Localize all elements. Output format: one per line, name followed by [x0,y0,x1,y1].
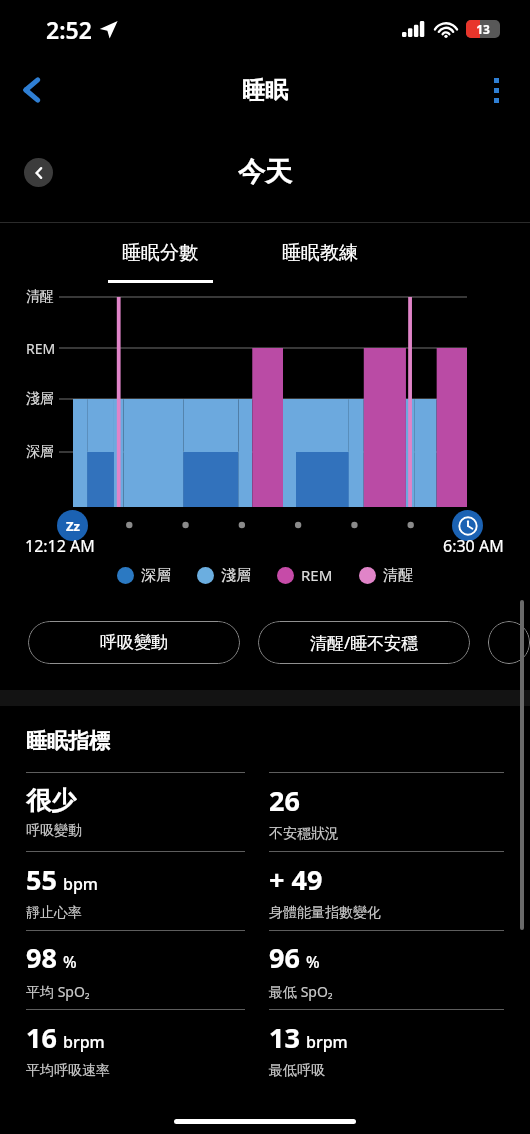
staticText: 16 [26,1019,57,1056]
button[interactable]: Previous day [24,158,53,187]
staticText: % [306,951,320,973]
staticText: 靜止心率 [26,904,82,922]
staticText: 13 [269,1019,300,1056]
staticText: brpm [63,1031,105,1053]
staticText: 6:30 AM [443,535,504,557]
staticText: 清醒 [26,288,54,306]
staticText: 淺層 [26,390,54,408]
staticText: 很少 [26,785,76,816]
button[interactable]: + 49 [269,852,504,930]
staticText: 睡眠指標 [26,728,110,754]
staticText: 清醒/睡不安穩 [310,631,419,654]
button[interactable]: 淺層 [197,562,251,589]
button[interactable]: Back [8,66,56,114]
staticText: brpm [306,1031,348,1053]
button[interactable]: 清醒 [359,562,413,589]
staticText: % [63,951,77,973]
button[interactable]: 16 [26,1010,265,1088]
button[interactable]: Wake time [452,510,483,541]
staticText: bpm [63,873,98,895]
staticText: 不安穩狀況 [269,825,339,843]
staticText: 睡眠教練 [282,241,358,265]
button[interactable]: REM [277,561,333,589]
staticText: 最低 SpO₂ [269,982,333,1001]
staticText: 淺層 [221,566,251,585]
button[interactable]: 睡眠分數 [80,223,240,283]
staticText: 12:12 AM [25,535,95,557]
button[interactable]: 26 [269,773,504,851]
staticText: 最低呼吸 [269,1062,325,1080]
staticText: 睡眠 [242,76,288,105]
staticText: 呼吸變動 [26,822,82,840]
staticText: 13 [476,21,490,37]
staticText: 平均呼吸速率 [26,1062,110,1080]
staticText: 平均 SpO₂ [26,982,90,1001]
button[interactable]: 呼吸變動 [28,621,240,664]
staticText: 睡眠分數 [122,241,198,265]
staticText: REM [301,565,333,585]
staticText: 身體能量指數變化 [269,904,381,922]
button[interactable]: 13 [269,1010,504,1088]
staticText: 今天 [238,155,292,189]
button[interactable]: Sleep start [57,510,88,541]
staticText: 2:52 [46,14,92,45]
staticText: 96 [269,939,300,976]
button[interactable]: More options [472,66,520,114]
button[interactable]: More filters [488,621,530,664]
button[interactable]: 清醒/睡不安穩 [258,621,470,664]
button[interactable]: 55 [26,852,265,930]
staticText: REM [26,339,56,358]
staticText: + 49 [269,861,323,898]
button[interactable]: 深層 [117,562,171,589]
staticText: Zz [66,517,80,535]
button[interactable]: 98 [26,931,265,1009]
staticText: 清醒 [383,566,413,585]
staticText: 55 [26,861,57,898]
button[interactable]: 睡眠教練 [240,223,400,283]
button[interactable]: 96 [269,931,504,1009]
staticText: 深層 [26,443,54,461]
staticText: 深層 [141,566,171,585]
button[interactable]: 很少 [26,773,265,851]
staticText: 26 [269,782,300,819]
staticText: 呼吸變動 [100,632,168,653]
staticText: 98 [26,939,57,976]
